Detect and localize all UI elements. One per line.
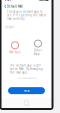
staticText: The default app is still set to Mail. Tr… [10, 64, 43, 74]
staticText: Default [4, 25, 14, 29]
staticText: Default Mail [7, 5, 23, 8]
staticText: Next [23, 89, 29, 92]
staticText: Check your default app to see if it's ge… [7, 10, 46, 20]
button[interactable]: Other App [31, 40, 45, 56]
button[interactable]: Mail App [8, 42, 22, 54]
staticText: Other App [34, 49, 42, 56]
staticText: 9:41 [4, 0, 11, 2]
button[interactable]: Check how to make it the default [17, 77, 36, 79]
staticText: Check how to make it the default [17, 77, 36, 79]
staticText: Mail App [9, 50, 21, 54]
button[interactable]: Default Mail [1, 3, 26, 10]
button[interactable]: Next [8, 87, 45, 94]
